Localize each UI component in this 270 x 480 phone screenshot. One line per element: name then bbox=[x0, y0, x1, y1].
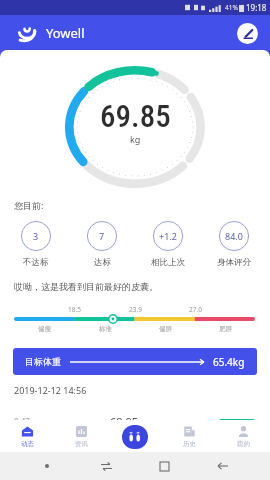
button[interactable]: Home bbox=[153, 455, 175, 477]
staticText: 19:18 bbox=[246, 2, 267, 13]
staticText: 3 bbox=[33, 230, 39, 242]
staticText: 身体评分 bbox=[217, 257, 251, 268]
staticText: 27.0 bbox=[189, 305, 202, 314]
staticText: Yowell bbox=[46, 24, 85, 42]
staticText: 您目前: bbox=[14, 199, 44, 211]
button[interactable]: +1.2 bbox=[143, 221, 193, 268]
staticText: 23.9 bbox=[129, 305, 142, 314]
staticText: 偏瘦 bbox=[38, 325, 51, 333]
staticText: +1.2 bbox=[159, 230, 177, 242]
staticText: 68.95 bbox=[110, 414, 139, 429]
button[interactable]: Menu bbox=[36, 455, 58, 477]
button[interactable]: 资讯 bbox=[54, 420, 108, 452]
button[interactable]: 目标体重 bbox=[13, 348, 257, 375]
staticText: 18.5 bbox=[68, 305, 81, 314]
staticText: 偏胖 bbox=[159, 325, 172, 333]
staticText: 我的 bbox=[237, 440, 250, 448]
staticText: 2019-12-12 14:56 bbox=[14, 384, 87, 396]
button[interactable]: 7 bbox=[77, 221, 127, 268]
staticText: kg bbox=[130, 133, 141, 145]
staticText: 9:47 bbox=[14, 416, 30, 427]
staticText: 资讯 bbox=[75, 440, 88, 448]
button[interactable]: Add weight record bbox=[122, 425, 148, 449]
button[interactable]: Edit weight bbox=[237, 23, 258, 44]
button[interactable]: Back bbox=[212, 455, 234, 477]
staticText: 84.0 bbox=[225, 230, 243, 242]
button[interactable]: Recents bbox=[95, 455, 117, 477]
staticText: 41% bbox=[225, 3, 238, 12]
staticText: 历史 bbox=[183, 440, 196, 448]
staticText: 65.4kg bbox=[213, 355, 245, 369]
staticText: 达标 bbox=[94, 257, 111, 268]
button[interactable]: 84.0 bbox=[209, 221, 259, 268]
staticText: 目标体重 bbox=[25, 356, 61, 367]
staticText: 7 bbox=[99, 230, 105, 242]
button[interactable]: 9:47 bbox=[14, 407, 255, 435]
button[interactable]: 动态 bbox=[0, 420, 54, 452]
button[interactable]: 我的 bbox=[216, 420, 270, 452]
button[interactable]: 3 bbox=[11, 221, 61, 268]
staticText: 标准 bbox=[99, 325, 112, 333]
staticText: 不达标 bbox=[23, 257, 49, 268]
staticText: 哎呦，这是我看到目前最好的皮囊。 bbox=[14, 281, 158, 292]
staticText: 肥胖 bbox=[219, 325, 232, 333]
button[interactable]: 历史 bbox=[162, 420, 216, 452]
staticText: 相比上次 bbox=[151, 257, 185, 268]
staticText: 69.85 bbox=[100, 98, 171, 134]
staticText: 动态 bbox=[21, 440, 34, 448]
